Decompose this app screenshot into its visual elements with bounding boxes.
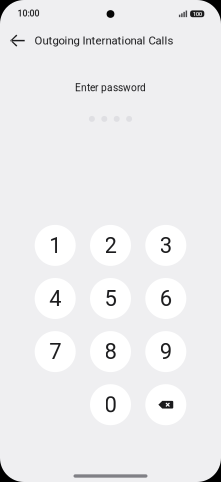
staticText: 2: [104, 232, 116, 258]
button[interactable]: 6: [145, 278, 186, 319]
button[interactable]: Outgoing International Calls: [34, 30, 173, 52]
staticText: 6: [160, 286, 172, 311]
button[interactable]: Back: [5, 29, 29, 53]
staticText: 8: [104, 339, 116, 364]
staticText: 4: [49, 286, 61, 311]
staticText: Enter password: [75, 82, 146, 94]
staticText: 5: [104, 286, 116, 311]
button[interactable]: 4: [35, 278, 76, 319]
staticText: 0: [104, 392, 116, 418]
staticText: 9: [160, 339, 172, 364]
staticText: 7: [49, 339, 61, 364]
button[interactable]: 7: [35, 331, 76, 372]
staticText: 1: [49, 232, 61, 258]
button[interactable]: 2: [90, 225, 131, 266]
button[interactable]: 8: [90, 331, 131, 372]
staticText: 3: [160, 232, 172, 258]
staticText: Outgoing International Calls: [34, 34, 173, 47]
button[interactable]: 3: [145, 225, 186, 266]
staticText: 10:00: [18, 8, 40, 18]
button[interactable]: Delete: [145, 384, 186, 425]
staticText: 100: [193, 10, 202, 17]
button[interactable]: 1: [35, 225, 76, 266]
button[interactable]: 9: [145, 331, 186, 372]
button[interactable]: 5: [90, 278, 131, 319]
button[interactable]: 0: [90, 384, 131, 425]
